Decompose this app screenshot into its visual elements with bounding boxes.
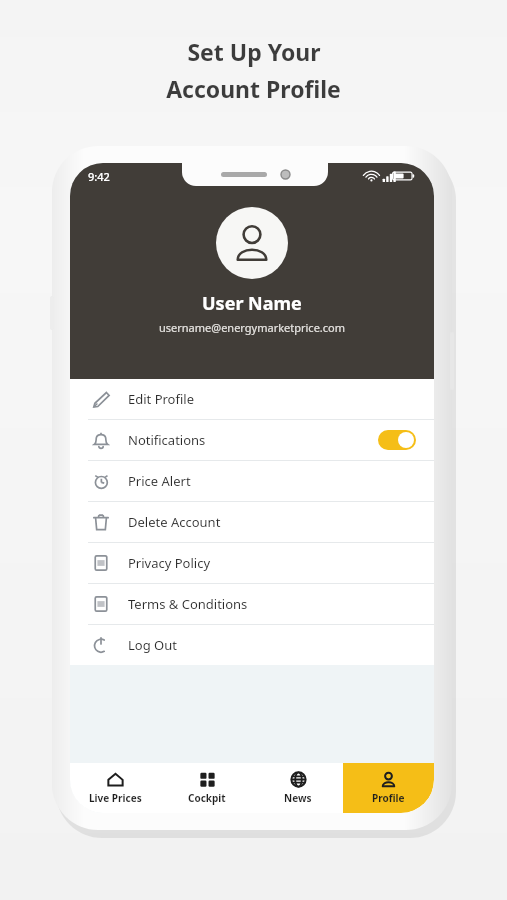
- staticText: username@energymarketprice.com: [159, 320, 346, 335]
- staticText: Privacy Policy: [128, 554, 211, 572]
- button[interactable]: Delete Account: [70, 502, 434, 542]
- button[interactable]: Log Out: [70, 625, 434, 665]
- button[interactable]: Privacy Policy: [70, 543, 434, 583]
- button[interactable]: Notifications: [70, 420, 434, 460]
- button[interactable]: Cockpit: [161, 763, 252, 813]
- staticText: User Name: [202, 291, 302, 316]
- staticText: Delete Account: [128, 513, 221, 531]
- button[interactable]: Terms & Conditions: [70, 584, 434, 624]
- staticText: News: [284, 791, 312, 805]
- button[interactable]: Toggle notifications: [378, 430, 416, 450]
- button[interactable]: Edit Profile: [70, 379, 434, 419]
- staticText: Cockpit: [188, 791, 226, 805]
- button[interactable]: Price Alert: [70, 461, 434, 501]
- button[interactable]: Live Prices: [70, 763, 161, 813]
- staticText: Live Prices: [89, 791, 142, 805]
- button[interactable]: News: [252, 763, 343, 813]
- staticText: 9:42: [88, 169, 110, 184]
- staticText: Notifications: [128, 431, 206, 449]
- staticText: Log Out: [128, 636, 177, 654]
- staticText: Account Profile: [166, 73, 341, 104]
- staticText: Profile: [372, 791, 405, 805]
- staticText: Price Alert: [128, 472, 191, 490]
- staticText: Terms & Conditions: [128, 595, 248, 613]
- button[interactable]: Profile: [343, 763, 434, 813]
- staticText: Edit Profile: [128, 390, 195, 408]
- staticText: Set Up Your: [187, 36, 321, 67]
